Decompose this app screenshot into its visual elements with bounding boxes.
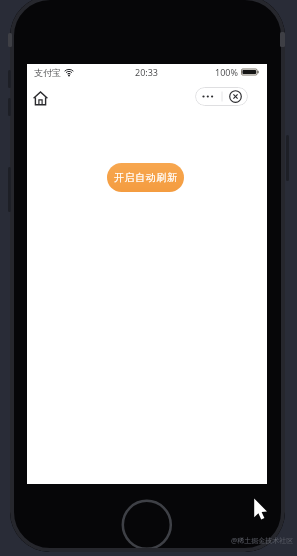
staticText: 支付宝	[34, 67, 61, 78]
button[interactable]: 开启自动刷新	[107, 163, 184, 192]
button[interactable]	[30, 88, 50, 108]
button[interactable]	[195, 87, 248, 106]
staticText: @稀土掘金技术社区	[231, 536, 294, 546]
staticText: 100%	[215, 66, 238, 78]
staticText: 开启自动刷新	[114, 171, 178, 184]
staticText: 20:33	[135, 66, 159, 78]
